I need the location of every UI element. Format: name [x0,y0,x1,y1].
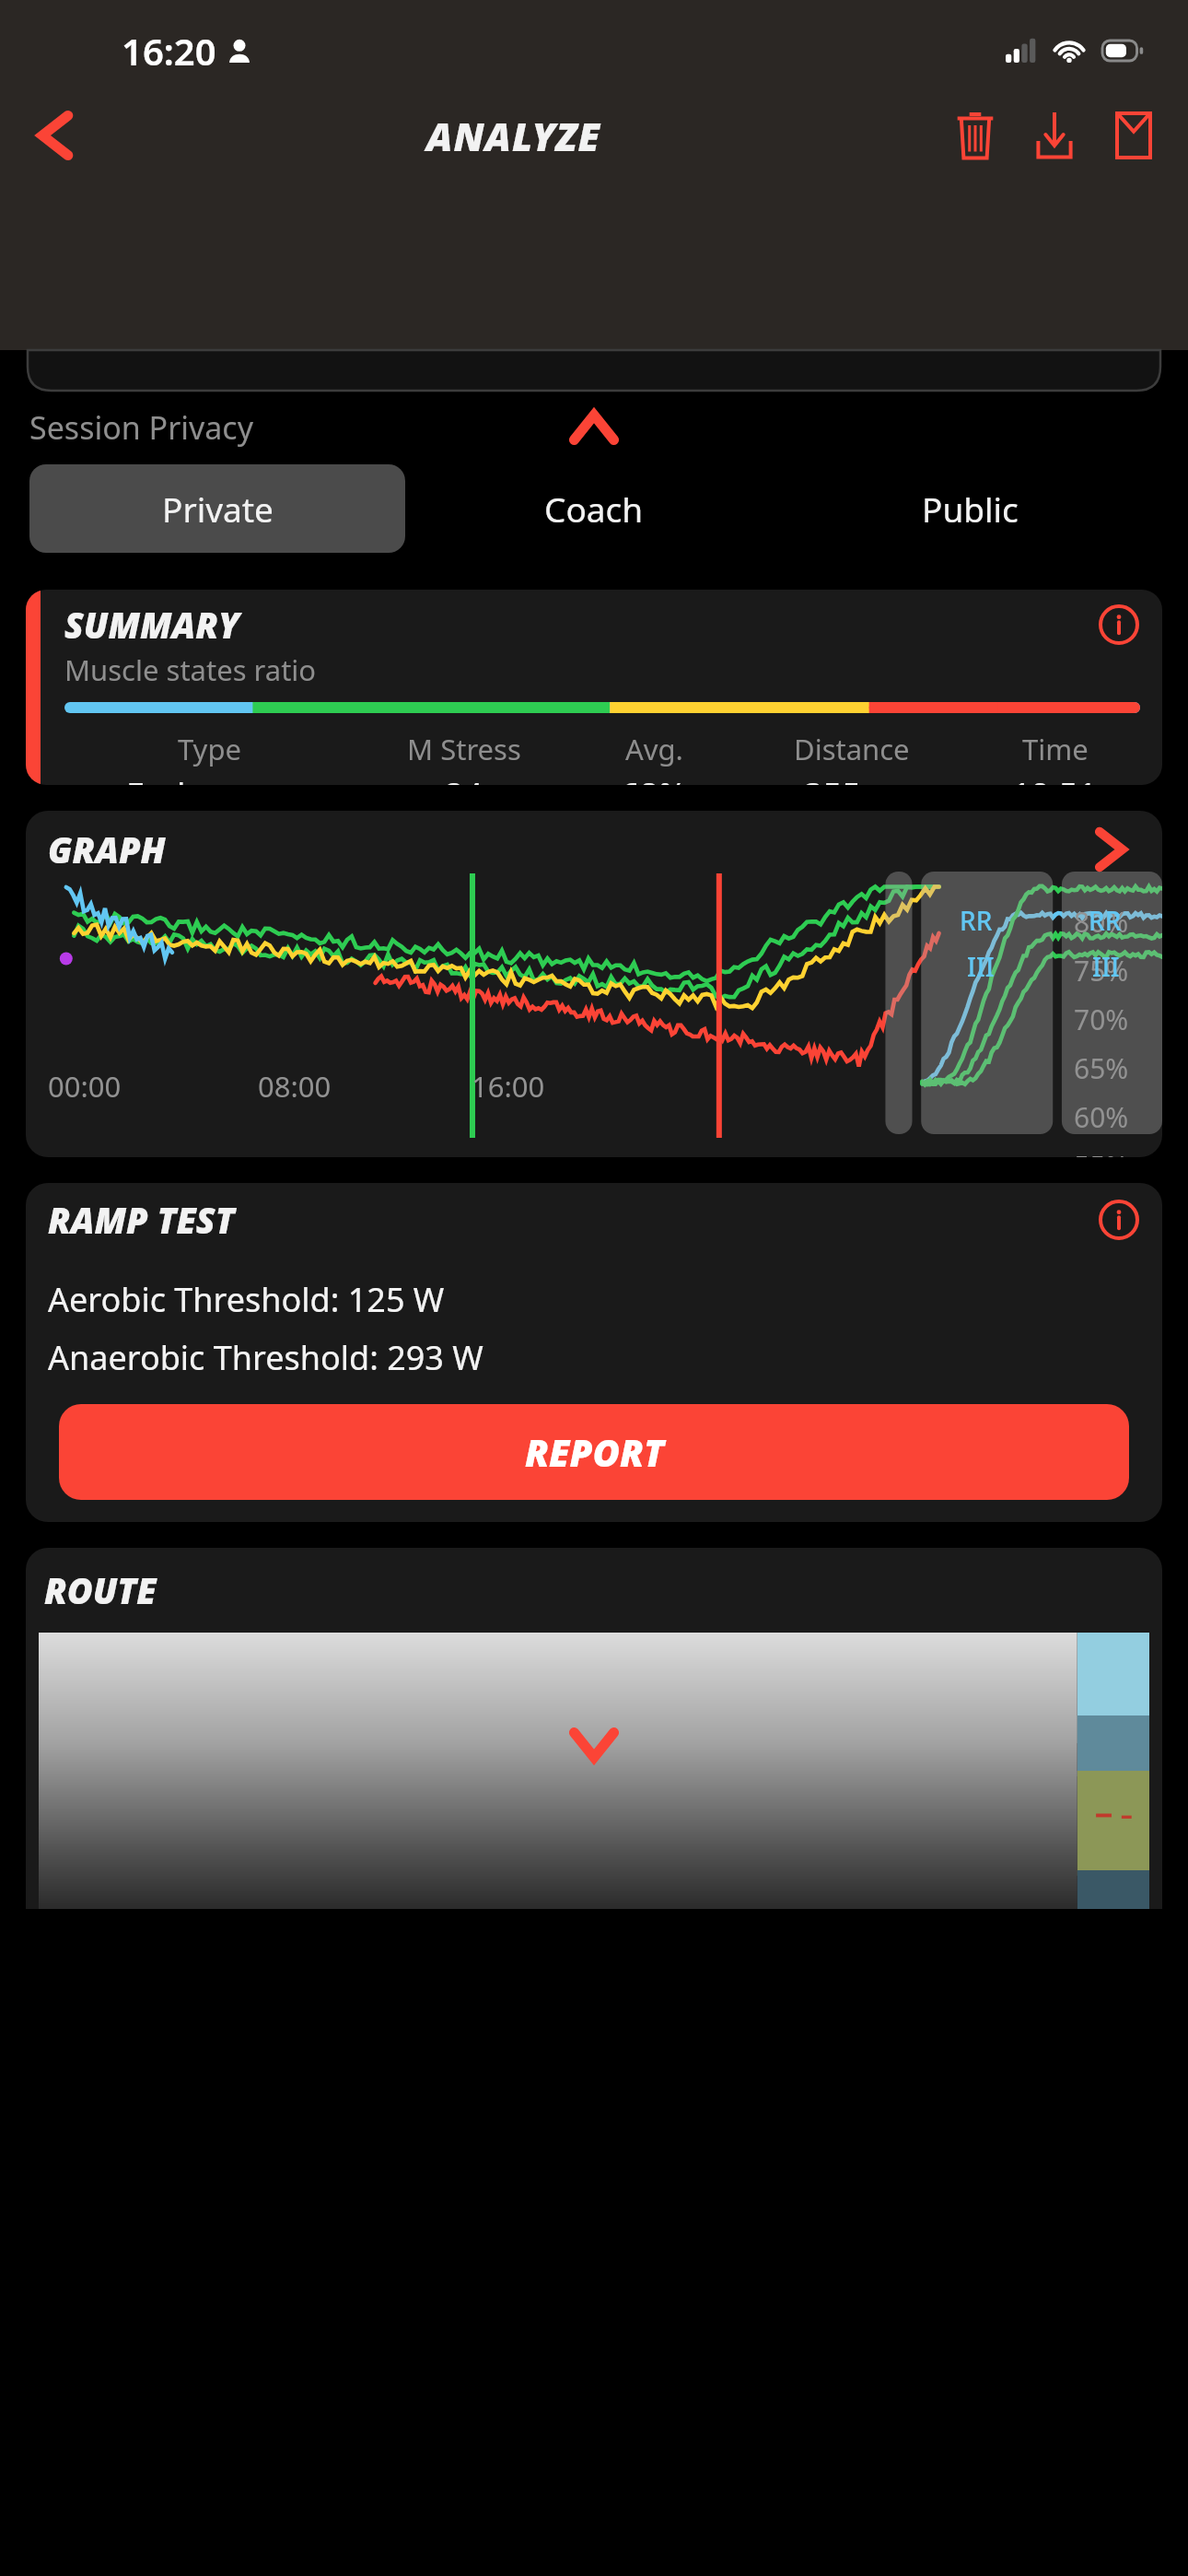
staticText: 00:00 [48,1067,122,1106]
staticText: ANALYZE [426,110,601,162]
button[interactable]: ROUTE [26,1548,1162,1909]
button[interactable]: Coach [405,464,782,553]
staticText: 16:00 [472,1067,545,1106]
button[interactable]: Info [1098,1199,1140,1241]
button[interactable]: Download [1020,101,1089,170]
staticText: 19:51 [1012,772,1098,785]
button[interactable]: Back [20,102,87,169]
staticText: Anaerobic Threshold: 293 W [48,1335,483,1380]
button[interactable]: Collapse privacy [561,394,627,461]
staticText: 60% [1074,1098,1129,1136]
button[interactable]: Public [782,464,1159,553]
staticText: 16:20 [122,26,216,76]
button[interactable]: Expand route [561,1712,627,1778]
staticText: 08:00 [258,1067,332,1106]
staticText: RR [960,903,993,938]
staticText: Distance [794,730,910,768]
button[interactable]: Delete [941,101,1009,170]
staticText: ROUTE [44,1566,157,1614]
staticText: REPORT [525,1427,664,1477]
button[interactable]: Open graph [1083,820,1142,879]
staticText: Muscle states ratio [64,650,317,689]
staticText: M Stress [407,730,521,768]
staticText: III [1092,949,1120,984]
staticText: SUMMARY [64,601,239,649]
staticText: 80% [1074,903,1129,941]
button[interactable]: SUMMARY [26,590,1162,785]
staticText: Type [178,730,241,768]
button[interactable]: Info [1098,603,1140,646]
staticText: 70% [1074,1001,1129,1038]
staticText: 68% [621,772,687,785]
button[interactable]: Private [29,464,405,553]
staticText: 355 m [804,772,901,785]
button[interactable]: Email [1100,101,1168,170]
staticText: Session Privacy [29,406,253,449]
staticText: Private [162,486,274,532]
staticText: Endurance [126,772,293,785]
staticText: 65% [1074,1049,1129,1087]
staticText: 24 [445,772,483,785]
staticText: 75% [1074,952,1129,989]
button[interactable]: REPORT [59,1404,1129,1500]
staticText: RAMP TEST [48,1196,235,1244]
staticText: III [967,949,995,984]
staticText: RR [1089,903,1122,938]
staticText: Public [922,486,1019,532]
staticText: Aerobic Threshold: 125 W [48,1277,445,1322]
staticText: Avg. [625,730,683,768]
staticText: GRAPH [48,825,166,873]
staticText: Time [1022,730,1089,768]
staticText: Coach [544,486,644,532]
button[interactable]: GRAPH [26,811,1162,1157]
